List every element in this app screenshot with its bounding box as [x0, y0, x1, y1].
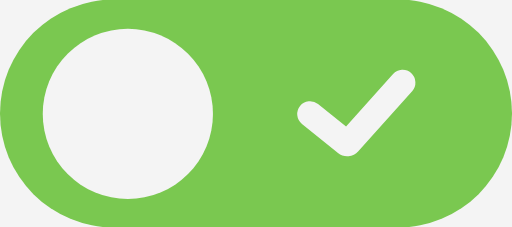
button[interactable]: Switch, on — [0, 0, 512, 227]
